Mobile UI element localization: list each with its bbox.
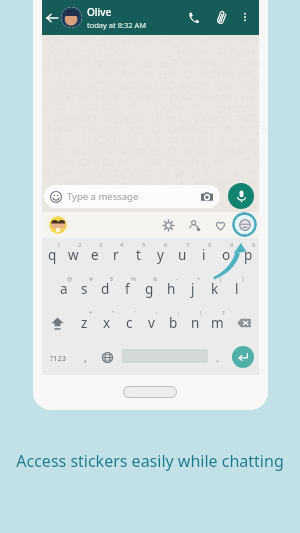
button[interactable]: 9 <box>215 238 237 272</box>
staticText: ! <box>200 309 202 317</box>
button[interactable]: + <box>182 272 204 306</box>
button[interactable]: Enter <box>232 346 254 368</box>
staticText: m <box>211 314 224 332</box>
staticText: l <box>235 280 239 298</box>
staticText: Olive <box>87 5 112 19</box>
staticText: i <box>202 246 206 264</box>
staticText: " <box>112 309 115 317</box>
staticText: 0 <box>252 241 256 249</box>
staticText: 9 <box>230 241 234 249</box>
staticText: s <box>81 280 88 298</box>
button[interactable]: 2 <box>63 238 84 272</box>
staticText: + <box>197 275 201 283</box>
staticText: * <box>89 309 93 317</box>
staticText: 5 <box>142 241 146 249</box>
staticText: b <box>169 314 178 332</box>
button[interactable]: ( <box>204 272 226 306</box>
button[interactable]: & <box>138 272 160 306</box>
button[interactable]: Add person <box>186 217 202 233</box>
button[interactable]: 4 <box>105 238 127 272</box>
staticText: n <box>191 314 200 332</box>
staticText: ? <box>222 309 225 317</box>
button[interactable]: 8 <box>193 238 215 272</box>
staticText: j <box>191 280 195 298</box>
staticText: ?123 <box>50 353 67 363</box>
staticText: Type a message <box>67 190 139 203</box>
button[interactable]: ? <box>206 306 228 340</box>
button[interactable]: @ <box>53 272 74 306</box>
button[interactable]: " <box>96 306 118 340</box>
button[interactable]: More options <box>237 9 252 24</box>
button[interactable]: Language <box>98 340 116 375</box>
button[interactable]: Stickers <box>232 212 257 237</box>
button[interactable]: ! <box>184 306 206 340</box>
staticText: : <box>156 309 158 317</box>
button[interactable]: Shift <box>42 306 73 340</box>
staticText: p <box>244 246 253 264</box>
staticText: ' <box>134 309 136 317</box>
button[interactable]: # <box>74 272 95 306</box>
button[interactable]: ; <box>162 306 184 340</box>
button[interactable]: 0 <box>237 238 259 272</box>
staticText: r <box>113 246 119 264</box>
staticText: k <box>211 280 219 298</box>
button[interactable]: Settings <box>160 217 176 233</box>
staticText: 2 <box>78 241 82 249</box>
staticText: h <box>167 280 176 298</box>
staticText: a <box>60 280 68 298</box>
staticText: ( <box>220 275 222 283</box>
staticText: @ <box>67 275 73 283</box>
staticText: # <box>89 275 93 283</box>
button[interactable]: Favorites <box>212 217 228 233</box>
staticText: e <box>91 246 99 264</box>
staticText: g <box>145 280 154 298</box>
staticText: 8 <box>208 241 212 249</box>
staticText: ) <box>242 275 244 283</box>
button[interactable]: Call <box>185 9 201 25</box>
staticText: w <box>68 246 79 264</box>
staticText: 6 <box>164 241 168 249</box>
staticText: v <box>148 314 155 332</box>
staticText: x <box>103 314 111 332</box>
button[interactable]: ) <box>226 272 248 306</box>
staticText: 4 <box>120 241 124 249</box>
staticText: 7 <box>186 241 190 249</box>
button[interactable]: % <box>116 272 138 306</box>
button[interactable]: * <box>73 306 96 340</box>
button[interactable]: 5 <box>127 238 149 272</box>
button[interactable]: ?123 <box>44 340 72 375</box>
staticText: f <box>125 280 130 298</box>
button[interactable]: Attach <box>213 9 229 25</box>
staticText: % <box>131 275 136 283</box>
button[interactable]: Voice message <box>228 183 254 209</box>
button[interactable]: Home <box>123 386 177 398</box>
staticText: c <box>126 314 133 332</box>
staticText: Access stickers easily while chatting <box>0 450 300 472</box>
button[interactable]: $ <box>95 272 116 306</box>
staticText: d <box>101 280 110 298</box>
staticText: 1 <box>57 241 61 249</box>
button[interactable]: 6 <box>149 238 171 272</box>
staticText: q <box>48 246 57 264</box>
button[interactable]: - <box>160 272 182 306</box>
staticText: $ <box>110 275 114 283</box>
staticText: - <box>176 275 178 283</box>
button[interactable]: 3 <box>84 238 105 272</box>
staticText: u <box>178 246 187 264</box>
button[interactable]: Recent emoji <box>49 216 67 234</box>
button[interactable]: : <box>140 306 162 340</box>
button[interactable]: , <box>76 340 94 375</box>
button[interactable]: Type a message <box>44 185 220 208</box>
staticText: . <box>216 351 219 365</box>
button[interactable]: 1 <box>42 238 63 272</box>
button[interactable]: Backspace <box>228 306 259 340</box>
staticText: y <box>157 246 164 264</box>
button[interactable]: ' <box>118 306 140 340</box>
button[interactable]: 7 <box>171 238 193 272</box>
staticText: today at 8:32 AM <box>87 20 147 30</box>
staticText: ; <box>178 309 180 317</box>
button[interactable]: . <box>208 340 226 375</box>
button[interactable]: Back <box>45 11 59 25</box>
staticText: 3 <box>99 241 103 249</box>
